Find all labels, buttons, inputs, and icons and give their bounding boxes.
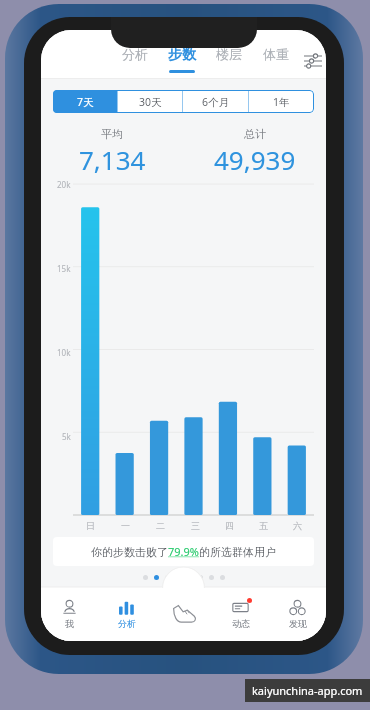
- staticText: 三: [191, 520, 200, 531]
- button[interactable]: 发现: [269, 587, 326, 641]
- button[interactable]: 动态: [212, 587, 269, 641]
- staticText: 五: [259, 520, 268, 531]
- button[interactable]: 1年: [249, 90, 314, 113]
- staticText: 的所选群体用户: [199, 545, 276, 559]
- staticText: 6个月: [202, 95, 230, 109]
- staticText: 一: [121, 520, 130, 531]
- staticText: 平均: [101, 127, 123, 141]
- staticText: 30天: [139, 95, 162, 109]
- staticText: 四: [225, 520, 234, 531]
- staticText: 六: [293, 520, 302, 531]
- staticText: 体重: [263, 46, 289, 62]
- staticText: 日: [86, 520, 95, 531]
- button[interactable]: 分析: [111, 44, 158, 78]
- staticText: 79.9%: [168, 544, 199, 559]
- staticText: 分析: [122, 46, 148, 62]
- staticText: 15k: [57, 263, 71, 274]
- button[interactable]: 分析: [98, 587, 155, 641]
- staticText: 我: [65, 618, 74, 629]
- staticText: 7天: [77, 95, 94, 109]
- staticText: 二: [156, 520, 165, 531]
- staticText: 1年: [273, 95, 290, 109]
- staticText: 7,134: [79, 142, 146, 177]
- staticText: 总计: [244, 127, 266, 141]
- button[interactable]: 6个月: [183, 90, 248, 113]
- staticText: 动态: [232, 618, 250, 629]
- button[interactable]: 总计: [183, 127, 326, 177]
- button[interactable]: 楼层: [205, 44, 252, 78]
- staticText: 5k: [62, 431, 71, 442]
- button[interactable]: 7天: [53, 90, 117, 113]
- staticText: 楼层: [216, 46, 242, 62]
- button[interactable]: 我: [41, 587, 98, 641]
- staticText: 发现: [289, 618, 307, 629]
- staticText: 49,939: [214, 142, 296, 177]
- button[interactable]: 30天: [118, 90, 182, 113]
- button[interactable]: Settings: [299, 44, 326, 78]
- button[interactable]: 你的步数击败了: [53, 537, 314, 566]
- button[interactable]: 步数: [158, 44, 205, 78]
- button[interactable]: 体重: [252, 44, 299, 78]
- staticText: 10k: [57, 347, 71, 358]
- staticText: 步数: [168, 46, 196, 64]
- button[interactable]: Run: [155, 587, 212, 641]
- staticText: 20k: [57, 179, 71, 190]
- staticText: 你的步数击败了: [91, 545, 168, 559]
- staticText: kaiyunchina-app.com: [252, 683, 363, 698]
- button[interactable]: 平均: [41, 127, 183, 177]
- staticText: 分析: [118, 618, 136, 629]
